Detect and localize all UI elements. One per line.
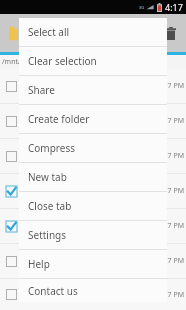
button[interactable]: Selected <box>0 174 186 208</box>
button[interactable]: Not selected <box>6 289 17 300</box>
staticText: Settings <box>28 228 67 242</box>
button[interactable]: Help <box>19 250 167 278</box>
button[interactable]: Selected <box>6 186 17 197</box>
staticText: Contact us <box>28 284 78 298</box>
button[interactable]: Compress <box>19 134 167 162</box>
button[interactable]: Not selected <box>0 139 186 173</box>
button[interactable]: Settings <box>19 221 167 249</box>
staticText: 3G <box>139 5 145 10</box>
button[interactable]: Not selected <box>6 116 17 127</box>
staticText: 4:17 PM <box>157 81 184 91</box>
button[interactable]: /mnt/sdcard <box>0 55 186 69</box>
button[interactable]: Delete <box>163 23 179 43</box>
staticText: Close tab <box>28 199 72 213</box>
button[interactable]: Not selected <box>0 244 186 278</box>
button[interactable]: Not selected <box>6 81 17 92</box>
staticText: Select all <box>28 25 70 39</box>
staticText: 4:17 PM <box>157 221 184 231</box>
staticText: New tab <box>28 170 67 184</box>
staticText: 4:17 PM <box>157 116 184 126</box>
staticText: 4:17 PM <box>157 151 184 161</box>
staticText: Create folder <box>28 112 90 126</box>
button[interactable]: Selected <box>6 221 17 232</box>
button[interactable]: Share <box>19 76 167 104</box>
staticText: 4:17 PM <box>157 186 184 196</box>
staticText: 4:17 <box>165 1 183 13</box>
button[interactable]: Not selected <box>6 151 17 162</box>
button[interactable]: Clear selection <box>19 47 167 75</box>
button[interactable]: Close tab <box>19 192 167 220</box>
staticText: 4:17 PM <box>157 290 184 300</box>
staticText: Share <box>28 83 55 97</box>
button[interactable]: Contact us <box>19 279 167 302</box>
staticText: Help <box>28 257 50 271</box>
staticText: /mnt/sdcard <box>2 57 43 67</box>
button[interactable]: Not selected <box>0 279 186 310</box>
button[interactable]: Selected <box>0 209 186 243</box>
button[interactable]: Folder <box>9 25 18 42</box>
staticText: Clear selection <box>28 54 97 68</box>
button[interactable]: Not selected <box>0 69 186 103</box>
staticText: 4:17 PM <box>157 256 184 266</box>
staticText: Compress <box>28 141 76 155</box>
button[interactable]: New tab <box>19 163 167 191</box>
button[interactable]: Not selected <box>6 256 17 267</box>
button[interactable]: Create folder <box>19 105 167 133</box>
button[interactable]: Not selected <box>0 104 186 138</box>
button[interactable]: Select all <box>19 18 167 46</box>
